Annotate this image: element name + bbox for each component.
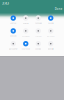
button[interactable]: Add Stop [32, 41, 44, 50]
button[interactable]: Send Mail [32, 15, 44, 24]
staticText: Open With [48, 48, 54, 50]
staticText: Markup PDF [9, 48, 18, 50]
staticText: Copy Link [10, 35, 17, 37]
button[interactable]: More Apps [44, 28, 57, 37]
staticText: Add Stop [35, 48, 41, 50]
button[interactable]: Open With [44, 41, 57, 50]
button[interactable]: New Note [19, 15, 32, 24]
staticText: Done [55, 7, 63, 11]
staticText: Save File [48, 22, 54, 24]
staticText: Add Tag [10, 22, 16, 24]
button[interactable]: Add Tag [7, 15, 19, 24]
button[interactable]: Print Page [32, 28, 44, 37]
staticText: More Apps [47, 35, 55, 37]
button[interactable]: Save File [44, 15, 57, 24]
button[interactable]: Markup PDF [7, 41, 19, 50]
button[interactable]: Copy Link [7, 28, 19, 37]
staticText: New Note [23, 22, 29, 24]
button[interactable]: Done [55, 7, 63, 11]
button[interactable]: Save Image [19, 28, 32, 37]
staticText: Print Page [35, 35, 42, 37]
staticText: Save Image [22, 35, 30, 37]
staticText: 3:43 [2, 0, 9, 6]
button[interactable]: Share Now [19, 41, 32, 50]
staticText: Send Mail [35, 22, 41, 24]
